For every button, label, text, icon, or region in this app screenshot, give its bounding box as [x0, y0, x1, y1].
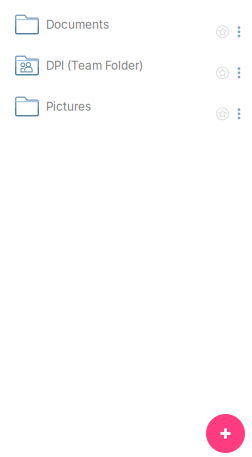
- button[interactable]: DPI (Team Folder): [0, 45, 252, 86]
- button[interactable]: Favourite Pictures: [214, 104, 231, 124]
- button[interactable]: More options for DPI (Team Folder): [231, 63, 247, 83]
- button[interactable]: Documents: [0, 4, 252, 45]
- button[interactable]: More options for Pictures: [231, 104, 247, 124]
- staticText: Pictures: [46, 99, 91, 114]
- button[interactable]: Favourite DPI (Team Folder): [214, 63, 231, 83]
- button[interactable]: Favourite Documents: [214, 22, 231, 42]
- button[interactable]: More options for Documents: [231, 22, 247, 42]
- staticText: Documents: [46, 17, 109, 32]
- button[interactable]: Add: [206, 414, 245, 453]
- button[interactable]: Pictures: [0, 86, 252, 127]
- staticText: DPI (Team Folder): [46, 58, 143, 73]
